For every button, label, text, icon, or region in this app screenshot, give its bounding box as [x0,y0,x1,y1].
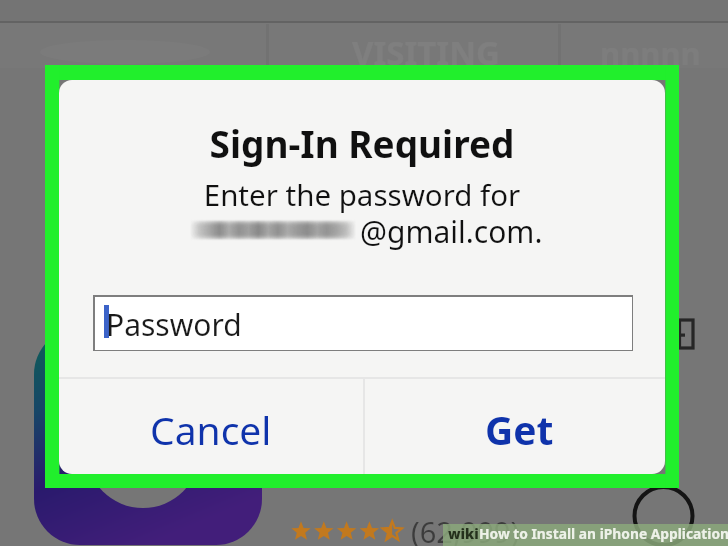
staticText: Cancel [150,403,272,456]
button[interactable]: Password field [93,295,633,351]
button[interactable]: Cancel [59,379,363,474]
staticText: Enter the password for [59,174,665,214]
staticText: nnnnn [600,32,701,74]
staticText: @gmail.com. [360,211,543,252]
staticText: wiki [448,524,479,543]
staticText: Sign-In Required [59,118,665,168]
staticText: VISITING [352,30,500,75]
staticText: Get [485,403,554,456]
staticText: (62,999) [411,512,520,546]
staticText: How to Install an iPhone Application [479,524,728,543]
staticText: Password [106,304,242,345]
button[interactable]: Get [363,379,665,474]
